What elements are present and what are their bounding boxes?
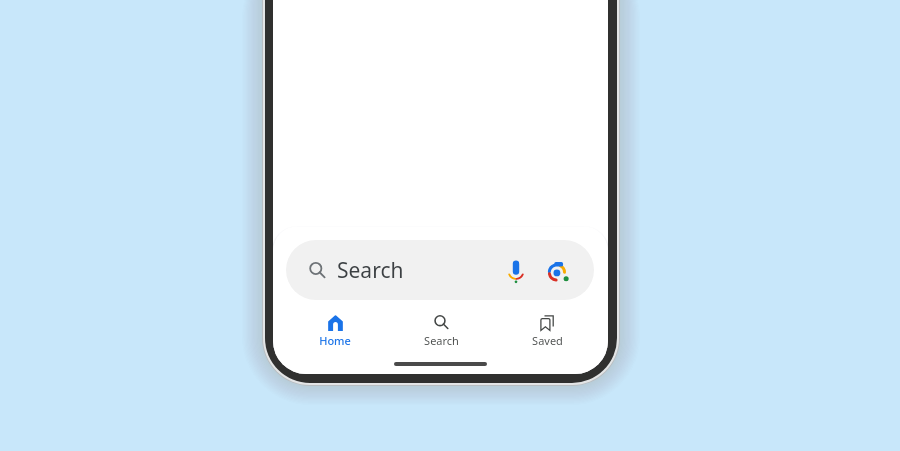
button[interactable]: Google Lens xyxy=(542,252,578,288)
staticText: Search xyxy=(424,333,459,348)
button[interactable]: Search xyxy=(388,311,494,348)
button[interactable]: Home xyxy=(282,311,388,348)
button[interactable]: Search xyxy=(286,240,594,300)
staticText: Home xyxy=(319,333,351,348)
button[interactable]: Voice search xyxy=(496,252,532,288)
staticText: Saved xyxy=(532,333,563,348)
staticText: Search xyxy=(337,256,404,285)
button[interactable]: Saved xyxy=(494,311,600,348)
